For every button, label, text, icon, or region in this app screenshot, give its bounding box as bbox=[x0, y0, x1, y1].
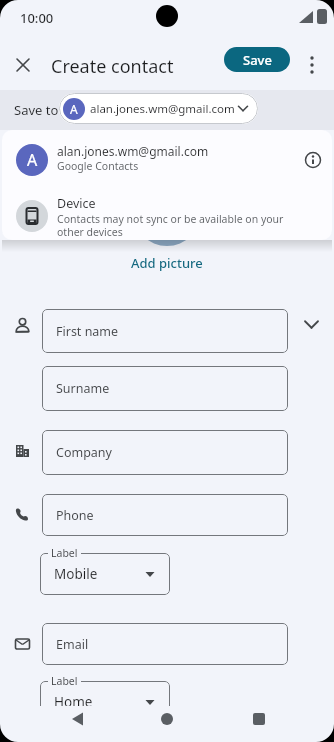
button[interactable]: Company bbox=[42, 430, 288, 475]
button[interactable]: A bbox=[2, 130, 332, 188]
staticText: Device bbox=[57, 195, 96, 212]
staticText: Save bbox=[243, 51, 272, 69]
staticText: Create contact bbox=[51, 54, 174, 79]
staticText: A bbox=[70, 101, 78, 117]
staticText: Company bbox=[56, 444, 112, 461]
staticText: 10:00 bbox=[20, 9, 54, 27]
button[interactable] bbox=[153, 705, 181, 733]
button[interactable] bbox=[10, 52, 36, 78]
button[interactable]: Save bbox=[224, 47, 290, 72]
button[interactable] bbox=[64, 705, 92, 733]
staticText: Email bbox=[56, 636, 89, 653]
staticText: First name bbox=[56, 323, 119, 340]
staticText: Label bbox=[51, 546, 78, 560]
staticText: Add picture bbox=[131, 254, 203, 272]
button[interactable]: First name bbox=[42, 309, 288, 353]
staticText: alan.jones.wm@gmail.com bbox=[90, 101, 235, 117]
staticText: Contacts may not sync or be available on… bbox=[57, 212, 284, 239]
staticText: alan.jones.wm@gmail.com bbox=[57, 143, 209, 159]
staticText: Surname bbox=[56, 380, 110, 397]
button[interactable]: Phone bbox=[42, 494, 288, 536]
button[interactable] bbox=[302, 52, 322, 78]
staticText: Google Contacts bbox=[57, 159, 139, 173]
button[interactable]: A bbox=[59, 93, 258, 124]
staticText: A bbox=[27, 149, 38, 171]
button[interactable]: Email bbox=[42, 623, 288, 665]
button[interactable]: Surname bbox=[42, 366, 288, 411]
button[interactable] bbox=[245, 705, 273, 733]
staticText: Phone bbox=[56, 507, 94, 524]
staticText: Home bbox=[54, 693, 93, 711]
staticText: Save to bbox=[14, 101, 59, 119]
staticText: Label bbox=[51, 674, 78, 688]
button[interactable]: Home bbox=[40, 681, 170, 723]
button[interactable]: Mobile bbox=[40, 553, 170, 595]
staticText: Mobile bbox=[54, 565, 98, 583]
button[interactable]: Add picture bbox=[127, 252, 207, 273]
button[interactable]: Device bbox=[2, 188, 332, 240]
